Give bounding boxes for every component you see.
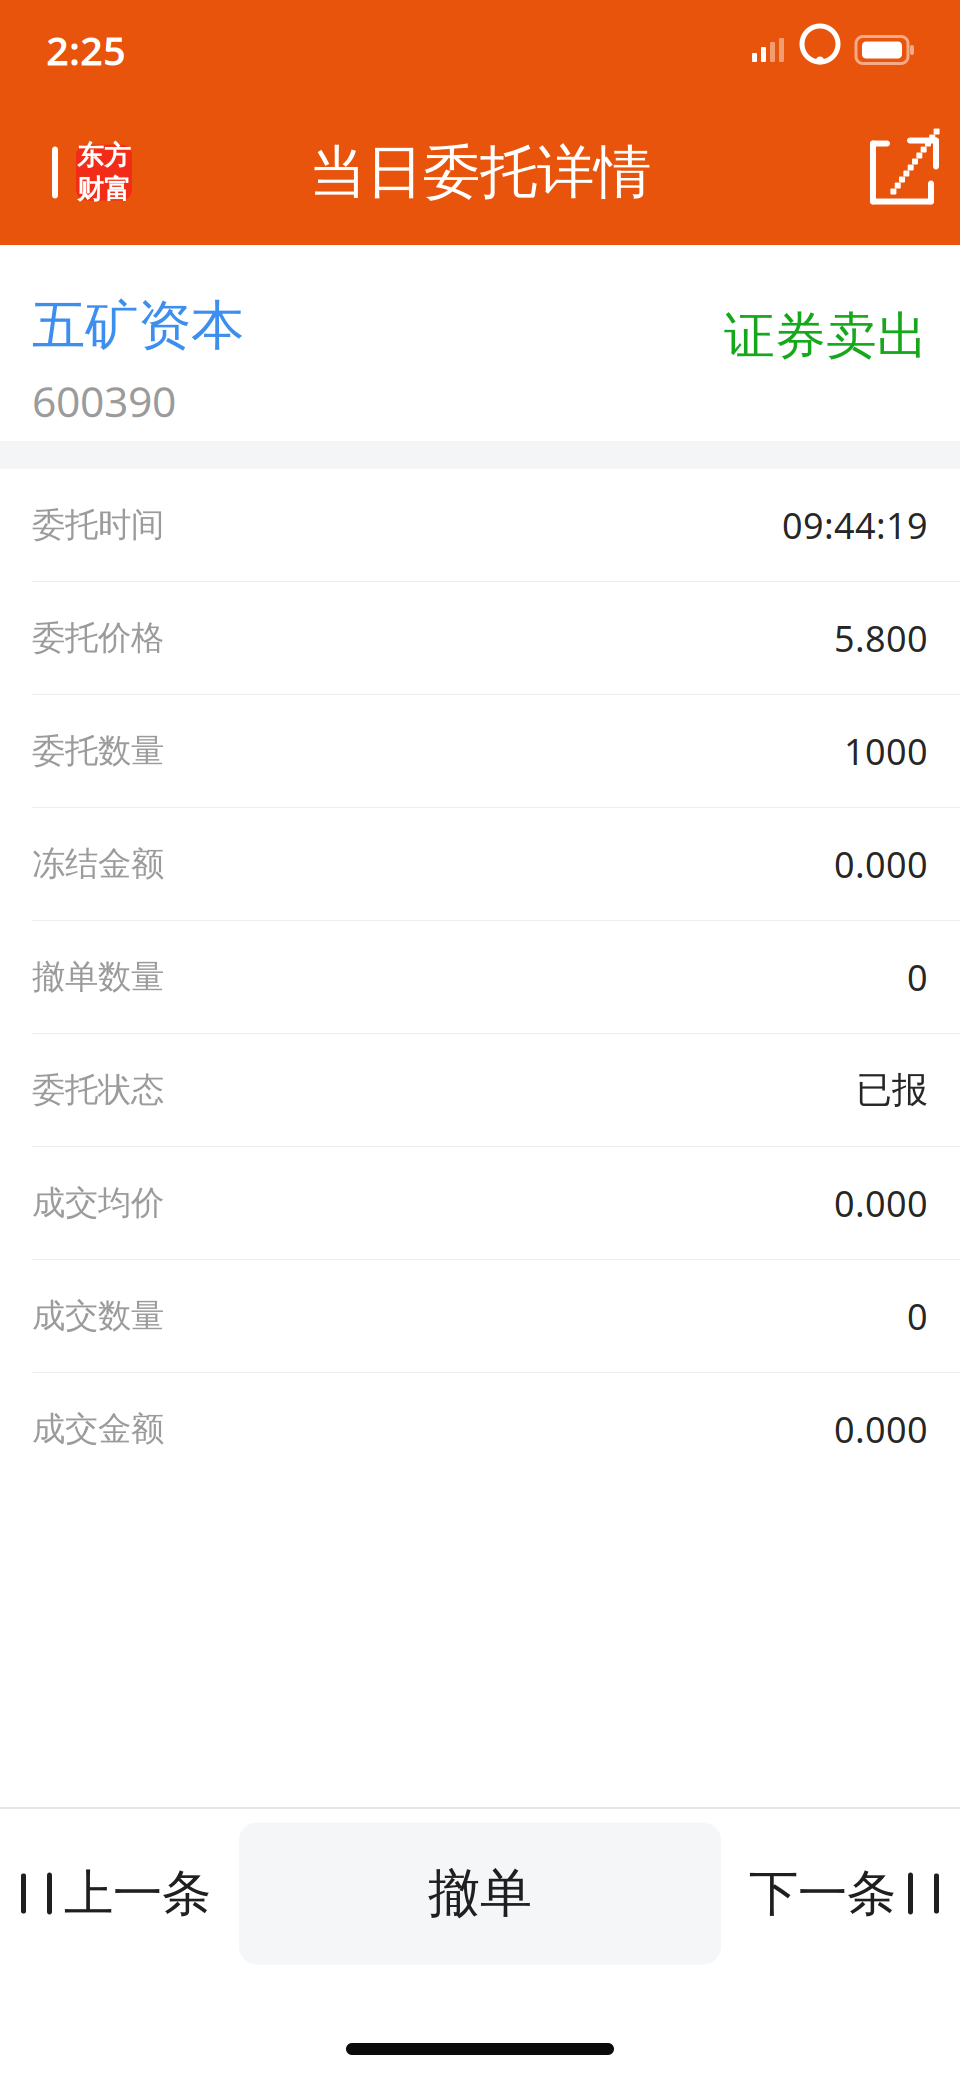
button[interactable]: Share [844, 100, 960, 245]
staticText: 委托价格 [32, 617, 164, 658]
button[interactable]: 上一条 [0, 1809, 239, 1978]
staticText: 成交数量 [32, 1295, 164, 1336]
staticText: 5.800 [834, 614, 928, 662]
staticText: 成交金额 [32, 1408, 164, 1449]
staticText: 委托状态 [32, 1069, 164, 1110]
staticText: 委托时间 [32, 504, 164, 545]
staticText: 1000 [844, 727, 928, 775]
staticText: 0.000 [834, 1405, 928, 1453]
staticText: 0 [907, 953, 928, 1001]
staticText: 600390 [32, 372, 176, 429]
staticText: 上一条 [64, 1863, 211, 1924]
button[interactable]: 撤单 [239, 1822, 721, 1964]
staticText: 0.000 [834, 1179, 928, 1227]
staticText: 当日委托详情 [309, 137, 651, 208]
staticText: 已报 [856, 1068, 928, 1112]
staticText: 证券卖出 [724, 305, 928, 367]
staticText: 0 [907, 1292, 928, 1340]
staticText: 成交均价 [32, 1182, 164, 1223]
staticText: 撤单数量 [32, 956, 164, 997]
button[interactable]: Back [0, 100, 156, 245]
staticText: 冻结金额 [32, 843, 164, 884]
staticText: 0.000 [834, 840, 928, 888]
staticText: 09:44:19 [782, 501, 928, 549]
staticText: 东方 [77, 139, 131, 172]
staticText: 下一条 [749, 1863, 896, 1924]
button[interactable]: 下一条 [721, 1809, 960, 1978]
staticText: 撤单 [428, 1862, 532, 1925]
staticText: 2:25 [46, 23, 126, 76]
staticText: 委托数量 [32, 730, 164, 771]
staticText: 五矿资本 [32, 293, 244, 358]
staticText: 财富 [77, 173, 131, 206]
